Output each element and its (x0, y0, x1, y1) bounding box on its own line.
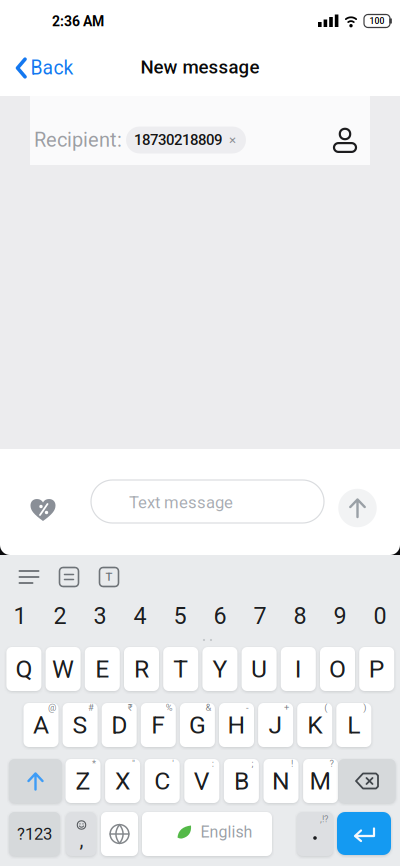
button[interactable]: H (219, 703, 254, 747)
staticText: Recipient: (34, 128, 122, 152)
button[interactable]: 2 (42, 599, 78, 633)
button[interactable] (331, 126, 359, 154)
staticText: ! (291, 758, 293, 769)
button[interactable]: K (297, 703, 332, 747)
button[interactable] (338, 759, 395, 803)
button[interactable]: V (184, 759, 219, 803)
button[interactable]: 0 (362, 599, 398, 633)
staticText: ; (251, 758, 253, 769)
staticText: U (251, 654, 267, 683)
staticText: 5 (173, 602, 186, 630)
button[interactable]: Z (65, 759, 100, 803)
button[interactable]: W (46, 647, 81, 691)
staticText: M (310, 766, 332, 795)
button[interactable]: B (224, 759, 259, 803)
staticText: , (79, 828, 83, 852)
button[interactable]: F (141, 703, 176, 747)
staticText: ( (324, 702, 327, 713)
staticText: 9 (333, 602, 346, 630)
button[interactable]: S (63, 703, 98, 747)
staticText: X (115, 766, 130, 795)
staticText: N (272, 766, 290, 795)
button[interactable]: N (263, 759, 298, 803)
button[interactable]: X (105, 759, 140, 803)
button[interactable]: English (142, 812, 272, 856)
staticText: 4 (133, 602, 146, 630)
staticText: A (33, 710, 49, 739)
staticText: New message (140, 56, 259, 78)
button[interactable]: D (102, 703, 137, 747)
button[interactable]: 5 (162, 599, 198, 633)
staticText: ₹ (128, 702, 133, 713)
staticText: B (234, 766, 249, 795)
staticText: 18730218809 (134, 131, 222, 149)
staticText: Q (15, 654, 32, 683)
staticText: ' (172, 758, 174, 769)
staticText: L (347, 710, 360, 739)
staticText: : (212, 758, 214, 769)
staticText: 7 (253, 602, 266, 630)
staticText: V (194, 766, 210, 795)
button[interactable]: O (320, 647, 355, 691)
button[interactable]: P (359, 647, 394, 691)
staticText: × (229, 132, 236, 148)
button[interactable]: J (258, 703, 293, 747)
button[interactable]: T (92, 560, 126, 594)
staticText: T (173, 654, 188, 683)
button[interactable] (337, 812, 391, 855)
button[interactable]: Text message (91, 480, 324, 523)
button[interactable]: I (281, 647, 316, 691)
button[interactable]: T (163, 647, 198, 691)
staticText: P (369, 654, 385, 683)
button[interactable]: U (242, 647, 277, 691)
button[interactable]: Back (14, 50, 73, 86)
button[interactable] (101, 812, 138, 856)
button[interactable]: , (66, 812, 96, 856)
button[interactable]: 4 (122, 599, 158, 633)
staticText: O (329, 654, 346, 683)
button[interactable]: Q (6, 647, 41, 691)
staticText: K (307, 710, 322, 739)
staticText: English (200, 823, 252, 841)
button[interactable]: 9 (322, 599, 358, 633)
button[interactable]: 7 (242, 599, 278, 633)
staticText: & (205, 702, 211, 713)
button[interactable]: 8 (282, 599, 318, 633)
staticText: 2 (53, 602, 66, 630)
button[interactable] (12, 560, 46, 594)
button[interactable]: C (145, 759, 180, 803)
button[interactable] (52, 560, 86, 594)
staticText: D (111, 710, 127, 739)
button[interactable]: ,!? (297, 812, 333, 856)
button[interactable] (9, 759, 62, 803)
button[interactable]: 3 (82, 599, 118, 633)
button[interactable]: L (336, 703, 371, 747)
button[interactable]: 18730218809 (126, 126, 246, 153)
staticText: C (154, 766, 170, 795)
button[interactable]: G (180, 703, 215, 747)
staticText: T (105, 570, 112, 584)
staticText: % (166, 702, 173, 713)
button[interactable]: A (23, 703, 58, 747)
button[interactable]: ?123 (9, 812, 60, 856)
button[interactable]: 1 (2, 599, 38, 633)
staticText: H (227, 710, 245, 739)
staticText: F (151, 710, 165, 739)
staticText: " (132, 758, 135, 769)
staticText: ,!? (320, 813, 328, 824)
staticText: ) (363, 702, 366, 713)
staticText: 2:36 AM (52, 13, 104, 30)
staticText: I (295, 654, 302, 683)
button[interactable]: M (303, 759, 338, 803)
button[interactable]: Y (202, 647, 237, 691)
button[interactable] (338, 489, 377, 527)
button[interactable] (28, 496, 58, 524)
staticText: R (134, 654, 149, 683)
button[interactable]: E (85, 647, 120, 691)
staticText: E (95, 654, 109, 683)
button[interactable]: 6 (202, 599, 238, 633)
staticText: Text message (129, 493, 233, 512)
staticText: Y (212, 654, 227, 683)
staticText: Z (75, 766, 90, 795)
button[interactable]: R (124, 647, 159, 691)
